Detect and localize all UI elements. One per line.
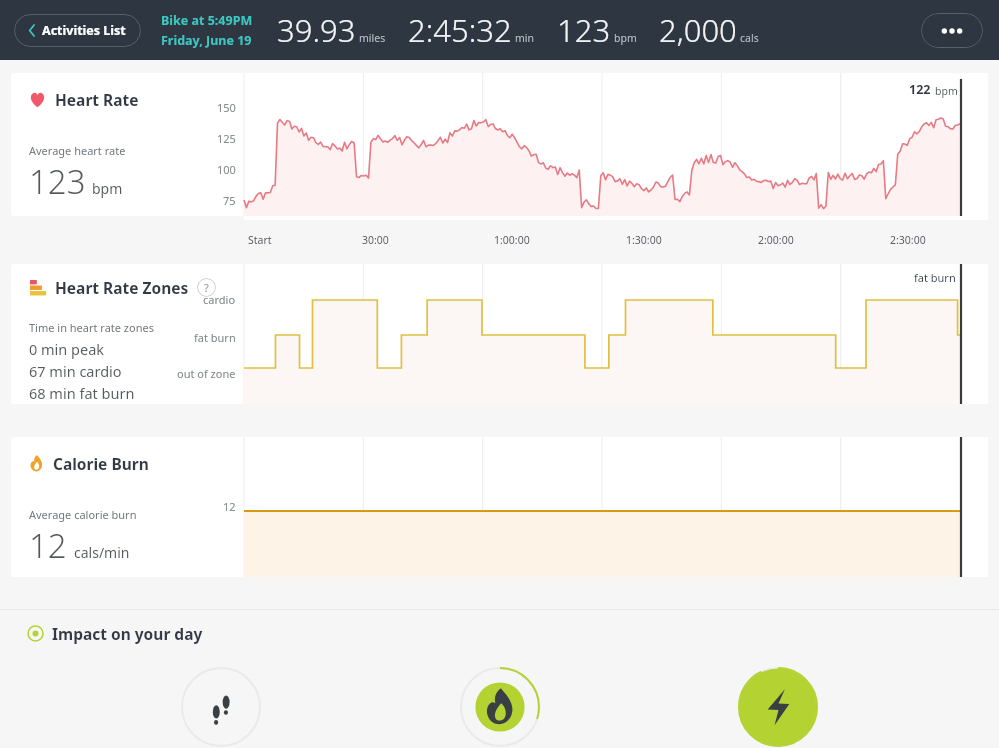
staticText: 1:00:00: [494, 233, 530, 247]
staticText: fat burn: [194, 330, 236, 345]
button[interactable]: Active zone: [720, 666, 836, 748]
button[interactable]: Calories: [442, 666, 558, 748]
staticText: 1:30:00: [626, 233, 662, 247]
staticText: 12: [223, 499, 236, 514]
staticText: Time in heart rate zones: [29, 320, 154, 335]
staticText: Average calorie burn: [29, 507, 137, 522]
staticText: 2,000: [659, 9, 737, 51]
staticText: 2:00:00: [758, 233, 794, 247]
staticText: cals: [740, 31, 759, 45]
staticText: 68 min fat burn: [29, 383, 135, 403]
staticText: 67 min cardio: [29, 361, 122, 381]
staticText: Bike at 5:49PM: [161, 12, 253, 29]
staticText: cardio: [203, 292, 236, 307]
staticText: bpm: [935, 84, 958, 98]
staticText: 2:30:00: [890, 233, 926, 247]
staticText: Impact on your day: [52, 623, 203, 644]
staticText: ?: [204, 280, 209, 295]
staticText: 123: [29, 159, 86, 204]
staticText: 150: [217, 100, 236, 115]
staticText: miles: [359, 31, 386, 45]
staticText: Average heart rate: [29, 143, 126, 158]
button[interactable]: Calorie Burn: [11, 437, 244, 577]
staticText: 122: [909, 81, 931, 98]
button[interactable]: Help about heart rate zones: [197, 278, 216, 297]
staticText: bpm: [92, 179, 123, 198]
staticText: 75: [223, 193, 236, 208]
button[interactable]: Heart Rate Zones: [11, 264, 244, 404]
staticText: 125: [217, 131, 236, 146]
staticText: min: [515, 31, 535, 45]
staticText: Start: [248, 233, 272, 247]
staticText: 39.93: [277, 9, 356, 51]
button[interactable]: Activities List: [14, 14, 141, 47]
staticText: bpm: [614, 31, 637, 45]
staticText: Friday, June 19: [161, 32, 252, 49]
button[interactable]: Heart Rate: [11, 73, 244, 216]
staticText: Calorie Burn: [53, 453, 149, 474]
button[interactable]: Steps: [163, 666, 279, 748]
staticText: cals/min: [74, 543, 130, 562]
staticText: out of zone: [177, 366, 236, 381]
staticText: 2:45:32: [408, 9, 512, 51]
staticText: 0 min peak: [29, 339, 105, 359]
staticText: 123: [557, 9, 611, 51]
staticText: Heart Rate: [55, 89, 139, 110]
staticText: fat burn: [914, 270, 956, 285]
staticText: Heart Rate Zones: [55, 277, 189, 298]
button[interactable]: More options: [921, 13, 983, 48]
staticText: 12: [29, 523, 67, 568]
staticText: 30:00: [362, 233, 389, 247]
staticText: 100: [217, 162, 236, 177]
staticText: Activities List: [42, 22, 126, 39]
